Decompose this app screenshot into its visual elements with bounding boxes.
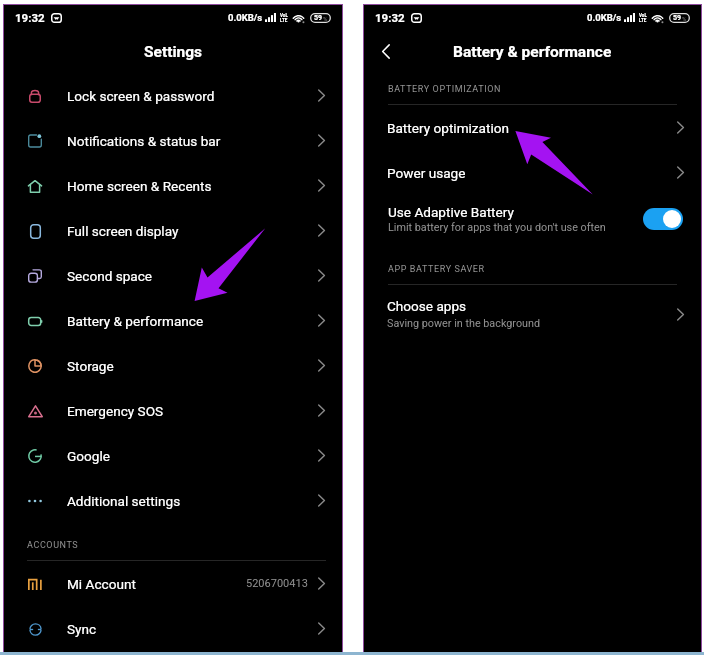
button[interactable]: Lock screen & password	[4, 73, 342, 118]
button[interactable]: Second space	[4, 253, 342, 298]
button[interactable]: Choose apps	[364, 285, 701, 343]
staticText: Lock screen & password	[67, 88, 215, 104]
staticText: 0.0KB/s	[587, 12, 622, 23]
staticText: BATTERY OPTIMIZATION	[388, 84, 501, 95]
staticText: %	[323, 15, 328, 22]
button[interactable]: Use Adaptive Battery	[364, 195, 701, 243]
staticText: Use Adaptive Battery	[388, 204, 514, 220]
staticText: ACCOUNTS	[27, 540, 79, 551]
staticText: Battery optimization	[387, 120, 510, 136]
staticText: VoL	[639, 13, 647, 18]
staticText: LTE	[280, 18, 288, 23]
staticText: Settings	[144, 43, 203, 61]
button[interactable]: Battery optimization	[364, 105, 701, 150]
staticText: Home screen & Recents	[67, 178, 212, 194]
button[interactable]: Back	[364, 30, 408, 73]
button[interactable]: Storage	[4, 343, 342, 388]
button[interactable]: Power usage	[364, 150, 701, 195]
staticText: Saving power in the background	[387, 317, 541, 330]
staticText: 0.0KB/s	[228, 12, 263, 23]
staticText: VoL	[280, 13, 288, 18]
staticText: Full screen display	[67, 223, 179, 239]
staticText: Second space	[67, 268, 153, 284]
button[interactable]: Emergency SOS	[4, 388, 342, 433]
staticText: Choose apps	[387, 298, 467, 314]
staticText: %	[682, 15, 687, 22]
button[interactable]: Battery & performance	[4, 298, 342, 343]
staticText: 5206700413	[246, 577, 308, 590]
staticText: Additional settings	[67, 493, 181, 509]
staticText: Sync	[67, 621, 97, 637]
staticText: Battery & performance	[67, 313, 204, 329]
staticText: Battery & performance	[453, 43, 612, 61]
staticText: 59	[314, 14, 323, 22]
staticText: Google	[67, 448, 110, 464]
staticText: 19:32	[15, 11, 45, 24]
button[interactable]: Sync	[4, 606, 342, 651]
button[interactable]: Use Adaptive Battery toggle	[643, 208, 683, 230]
staticText: Mi Account	[67, 576, 136, 592]
staticText: 59	[673, 14, 682, 22]
staticText: Notifications & status bar	[67, 133, 221, 149]
staticText: Emergency SOS	[67, 403, 164, 419]
button[interactable]: Additional settings	[4, 478, 342, 523]
staticText: 19:32	[375, 11, 405, 24]
staticText: Limit battery for apps that you don't us…	[388, 221, 606, 234]
staticText: Power usage	[387, 165, 466, 181]
staticText: APP BATTERY SAVER	[388, 264, 485, 275]
button[interactable]: Mi Account	[4, 561, 342, 606]
staticText: Storage	[67, 358, 114, 374]
button[interactable]: Full screen display	[4, 208, 342, 253]
button[interactable]: Google	[4, 433, 342, 478]
button[interactable]: Home screen & Recents	[4, 163, 342, 208]
staticText: LTE	[639, 18, 647, 23]
button[interactable]: Notifications & status bar	[4, 118, 342, 163]
